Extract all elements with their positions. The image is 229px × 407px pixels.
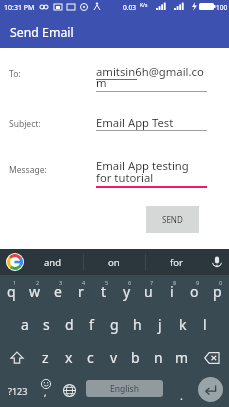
- staticText: 4: [82, 279, 86, 286]
- button[interactable]: 9: [183, 275, 206, 308]
- button[interactable]: m: [170, 341, 193, 374]
- button[interactable]: n: [147, 341, 170, 374]
- staticText: 9: [196, 279, 200, 286]
- staticText: 5: [105, 279, 109, 286]
- staticText: f: [89, 315, 94, 334]
- button[interactable]: l: [193, 308, 216, 341]
- button[interactable]: k: [171, 308, 194, 341]
- staticText: m: [96, 75, 107, 90]
- button[interactable]: c: [79, 341, 102, 374]
- staticText: i: [170, 282, 174, 301]
- staticText: m: [175, 348, 189, 367]
- staticText: h: [133, 315, 142, 334]
- staticText: 2: [36, 279, 40, 286]
- button[interactable]: h: [126, 308, 149, 341]
- button[interactable]: d: [58, 308, 81, 341]
- staticText: t: [101, 282, 107, 301]
- staticText: y: [123, 282, 131, 301]
- staticText: amitsin6h@gmail.co: [96, 64, 204, 79]
- staticText: Subject:: [9, 118, 41, 130]
- staticText: w: [29, 282, 41, 301]
- staticText: English: [110, 383, 139, 395]
- button[interactable]: 8: [160, 275, 183, 308]
- button[interactable]: Change language: [58, 374, 81, 407]
- button[interactable]: f: [80, 308, 103, 341]
- staticText: c: [87, 348, 94, 367]
- button[interactable]: for: [145, 249, 207, 275]
- button[interactable]: z: [34, 341, 57, 374]
- button[interactable]: j: [148, 308, 171, 341]
- staticText: Email App Test: [96, 115, 174, 130]
- staticText: K/s: [140, 2, 148, 9]
- button[interactable]: 2: [23, 275, 46, 308]
- staticText: r: [78, 282, 84, 301]
- staticText: To:: [9, 68, 21, 80]
- staticText: g: [110, 315, 119, 334]
- staticText: for: [170, 256, 183, 269]
- button[interactable]: b: [124, 341, 147, 374]
- button[interactable]: Shift: [0, 341, 34, 374]
- button[interactable]: Backspace: [195, 341, 229, 374]
- staticText: SEND: [162, 214, 183, 225]
- staticText: b: [131, 348, 140, 367]
- staticText: .: [180, 388, 183, 403]
- button[interactable]: s: [35, 308, 58, 341]
- button[interactable]: v: [102, 341, 125, 374]
- button[interactable]: a: [13, 308, 36, 341]
- staticText: 3: [59, 279, 63, 286]
- staticText: o: [190, 282, 199, 301]
- staticText: q: [7, 282, 16, 301]
- button[interactable]: 5: [92, 275, 115, 308]
- staticText: d: [65, 315, 74, 334]
- staticText: u: [144, 282, 153, 301]
- staticText: s: [43, 315, 50, 334]
- staticText: Message:: [9, 164, 47, 176]
- button[interactable]: 1: [0, 275, 23, 308]
- staticText: for tutorial: [96, 170, 154, 185]
- staticText: 8: [173, 279, 177, 286]
- staticText: ,: [44, 386, 47, 398]
- staticText: 10:31 PM: [4, 3, 35, 13]
- button[interactable]: x: [57, 341, 80, 374]
- staticText: x: [65, 348, 73, 367]
- staticText: 100: [216, 3, 228, 12]
- staticText: 0: [219, 279, 223, 286]
- staticText: and: [44, 256, 62, 269]
- button[interactable]: Emoji: [36, 374, 56, 407]
- staticText: 6: [128, 279, 132, 286]
- staticText: Send Email: [10, 24, 74, 41]
- button[interactable]: ?123: [0, 374, 36, 407]
- staticText: p: [213, 282, 222, 301]
- button[interactable]: English: [86, 380, 163, 397]
- staticText: e: [54, 282, 62, 301]
- button[interactable]: Enter: [198, 377, 223, 402]
- staticText: a: [21, 315, 29, 334]
- staticText: k: [179, 315, 187, 334]
- button[interactable]: 6: [115, 275, 138, 308]
- button[interactable]: 0: [206, 275, 229, 308]
- staticText: on: [108, 256, 120, 269]
- staticText: v: [110, 348, 118, 367]
- button[interactable]: 7: [137, 275, 160, 308]
- button[interactable]: on: [83, 249, 145, 275]
- button[interactable]: 4: [69, 275, 92, 308]
- button[interactable]: SEND: [146, 206, 199, 233]
- button[interactable]: .: [170, 374, 193, 407]
- button[interactable]: 3: [46, 275, 69, 308]
- staticText: 0.03: [123, 3, 136, 12]
- staticText: 1: [13, 279, 17, 286]
- button[interactable]: g: [103, 308, 126, 341]
- staticText: n: [154, 348, 163, 367]
- staticText: ?123: [8, 385, 28, 397]
- button[interactable]: and: [22, 249, 84, 275]
- staticText: z: [42, 348, 49, 367]
- staticText: j: [158, 315, 162, 334]
- staticText: l: [203, 315, 207, 334]
- staticText: 7: [150, 279, 154, 286]
- button[interactable]: Voice input: [205, 249, 228, 275]
- staticText: Email App testing: [96, 158, 189, 173]
